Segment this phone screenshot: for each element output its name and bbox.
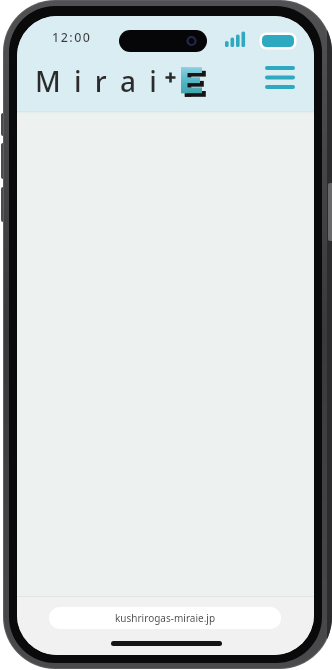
button[interactable]: kushrirogas-miraie.jp (49, 607, 281, 629)
staticText: kushrirogas-miraie.jp (115, 611, 216, 625)
button[interactable] (257, 54, 303, 100)
staticText: M i r a i (35, 62, 160, 100)
staticText: 12:00 (52, 29, 92, 46)
